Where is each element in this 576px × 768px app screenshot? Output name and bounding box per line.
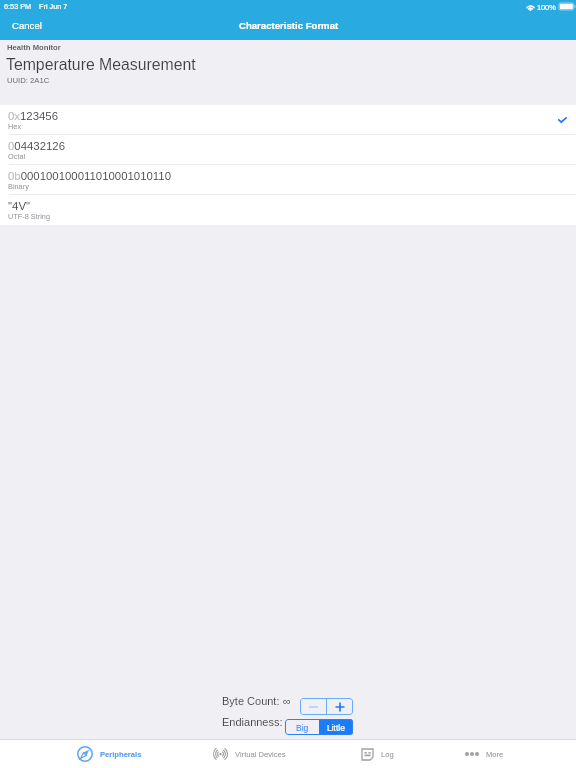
staticText: Byte Count: [222,695,280,707]
staticText: Big [296,723,309,732]
button[interactable]: "4V" [0,195,576,225]
staticText: Octal [8,152,26,160]
staticText: 6:53 PM [4,2,32,10]
button[interactable]: Virtual Devices [184,740,314,768]
staticText: Health Monitor [7,43,61,52]
staticText: 0x123456 [8,110,59,123]
staticText: UTF-8 String [8,212,51,220]
staticText: 100% [537,3,556,11]
staticText: Fri Jun 7 [39,2,68,10]
staticText: UUID: 2A1C [7,76,50,85]
button[interactable]: Decrease byte count [300,698,326,715]
staticText: "4V" [8,200,31,213]
staticText: Log [381,750,394,758]
button[interactable]: Little [319,719,353,735]
staticText: ∞ [283,695,291,707]
button[interactable]: 004432126 [0,135,576,164]
button[interactable]: Big [285,719,319,735]
button[interactable]: Cancel [0,12,54,40]
staticText: 0b000100100011010001010110 [8,170,172,183]
button[interactable]: Increase byte count [327,698,353,715]
staticText: Little [327,723,345,732]
staticText: Peripherals [100,750,142,758]
button[interactable]: 0b000100100011010001010110 [0,165,576,194]
staticText: Characteristic Format [239,20,339,31]
staticText: Binary [8,182,29,190]
staticText: More [486,750,504,758]
staticText: Hex [8,122,22,130]
staticText: Temperature Measurement [6,56,196,74]
button[interactable]: More [444,740,524,768]
staticText: 004432126 [8,140,66,153]
button[interactable]: Log [336,740,418,768]
button[interactable]: 0x123456 [0,105,576,134]
button[interactable]: Peripherals [48,740,171,768]
staticText: Cancel [12,20,42,31]
staticText: Endianness: [222,716,283,728]
staticText: Virtual Devices [235,750,286,758]
